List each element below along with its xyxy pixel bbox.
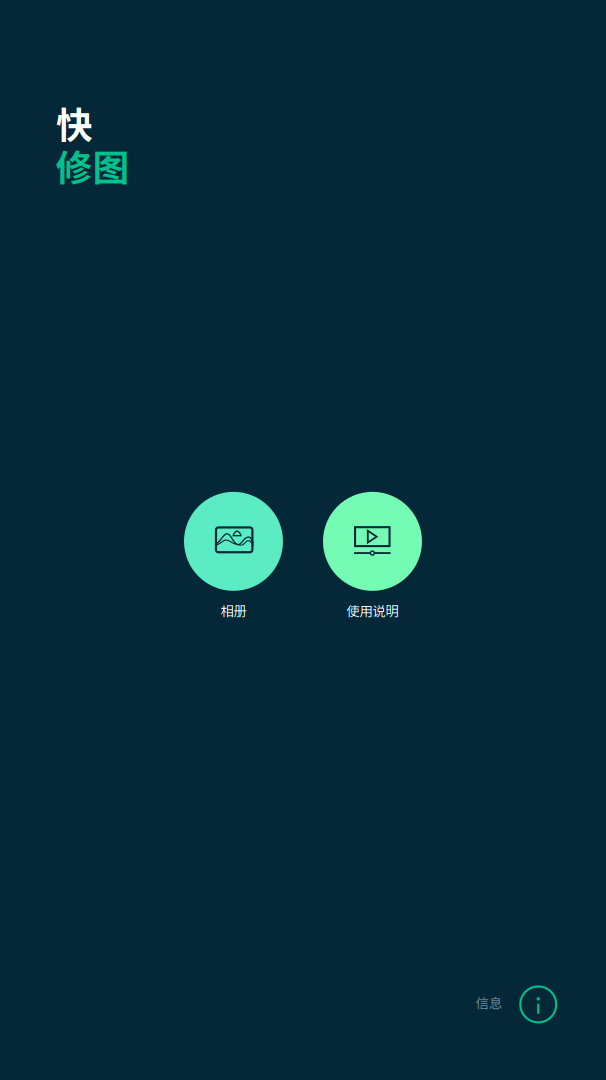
staticText: 信息 — [476, 993, 502, 1012]
staticText: 使用说明 — [346, 601, 398, 620]
button[interactable]: 使用说明 — [323, 492, 422, 620]
staticText: 快 — [56, 96, 93, 150]
button[interactable]: 信息 — [476, 985, 557, 1023]
staticText: 修图 — [55, 139, 129, 192]
button[interactable]: 相册 — [184, 492, 283, 620]
staticText: 相册 — [220, 601, 246, 620]
